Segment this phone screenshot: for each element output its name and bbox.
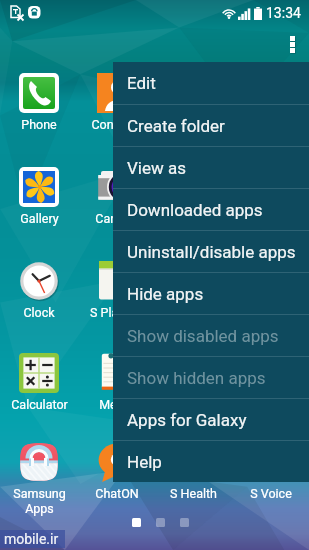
staticText: Clock — [23, 305, 55, 320]
button[interactable]: Phone — [0, 73, 78, 159]
button[interactable]: ChatON — [78, 442, 155, 528]
staticText: View as — [127, 158, 186, 178]
button[interactable]: Uninstall/disable apps — [113, 231, 309, 272]
button[interactable]: Internet — [232, 73, 309, 159]
button[interactable]: Music — [155, 353, 232, 439]
button[interactable]: S Voice — [232, 442, 309, 528]
staticText: Gallery — [20, 211, 59, 226]
button[interactable]: Show hidden apps — [113, 357, 309, 398]
button[interactable]: Messages — [155, 73, 232, 159]
button[interactable]: Create folder — [113, 105, 309, 146]
button[interactable]: Show disabled apps — [113, 315, 309, 356]
staticText: mobile.ir — [4, 531, 59, 547]
staticText: Show disabled apps — [127, 326, 279, 346]
staticText: Downloaded apps — [127, 200, 263, 220]
staticText: 13:34 — [266, 5, 301, 21]
button[interactable]: S Planner — [78, 261, 155, 347]
staticText: Drive — [179, 305, 208, 320]
staticText: Create folder — [127, 116, 225, 136]
staticText: S Planner — [90, 305, 143, 320]
button[interactable]: More options — [275, 26, 309, 62]
button[interactable]: Play Store — [155, 167, 232, 253]
staticText: Apps for Galaxy — [127, 410, 247, 430]
staticText: Messages — [165, 117, 223, 132]
staticText: Calculator — [11, 397, 68, 412]
button[interactable]: Contacts — [78, 73, 155, 159]
staticText: ChatON — [95, 486, 139, 501]
button[interactable]: Page 1 — [132, 518, 141, 527]
staticText: Uninstall/disable apps — [127, 242, 296, 262]
staticText: Samsung Apps — [13, 486, 66, 516]
button[interactable]: Camera — [78, 167, 155, 253]
button[interactable]: Apps for Galaxy — [113, 399, 309, 440]
staticText: Help — [127, 452, 162, 472]
staticText: Maps — [255, 305, 287, 320]
staticText: S Voice — [250, 486, 292, 501]
staticText: Hide apps — [127, 284, 204, 304]
staticText: Music — [177, 397, 211, 412]
button[interactable]: Edit — [113, 62, 309, 104]
button[interactable]: Drive — [155, 261, 232, 347]
button[interactable]: Page 3 — [180, 518, 189, 527]
staticText: Play Store — [166, 211, 222, 226]
button[interactable]: Video — [232, 353, 309, 439]
button[interactable]: Samsung Apps — [0, 442, 78, 528]
staticText: Show hidden apps — [127, 368, 266, 388]
button[interactable]: Memo — [78, 353, 155, 439]
button[interactable]: S Health — [155, 442, 232, 528]
staticText: Video — [255, 397, 287, 412]
button[interactable]: Help — [113, 441, 309, 482]
staticText: Contacts — [91, 117, 142, 132]
staticText: S Health — [170, 486, 217, 501]
button[interactable]: Email — [232, 167, 309, 253]
staticText: Camera — [95, 211, 139, 226]
button[interactable]: Gallery — [0, 167, 78, 253]
staticText: Phone — [21, 117, 57, 132]
button[interactable]: Hide apps — [113, 273, 309, 314]
staticText: Edit — [127, 73, 156, 93]
button[interactable]: Downloaded apps — [113, 189, 309, 230]
staticText: Email — [255, 211, 286, 226]
button[interactable]: Maps — [232, 261, 309, 347]
button[interactable]: Clock — [0, 261, 78, 347]
staticText: Memo — [99, 397, 135, 412]
button[interactable]: Calculator — [0, 353, 78, 439]
button[interactable]: View as — [113, 147, 309, 188]
button[interactable]: Page 2 — [156, 518, 165, 527]
